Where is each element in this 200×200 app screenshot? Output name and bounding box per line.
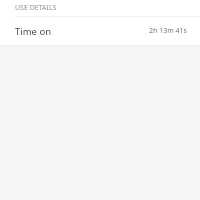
- staticText: USE DETAILS: [15, 3, 57, 13]
- staticText: Time on: [15, 25, 52, 38]
- button[interactable]: Time on: [0, 17, 200, 45]
- staticText: 2h 13m 41s: [149, 26, 187, 36]
